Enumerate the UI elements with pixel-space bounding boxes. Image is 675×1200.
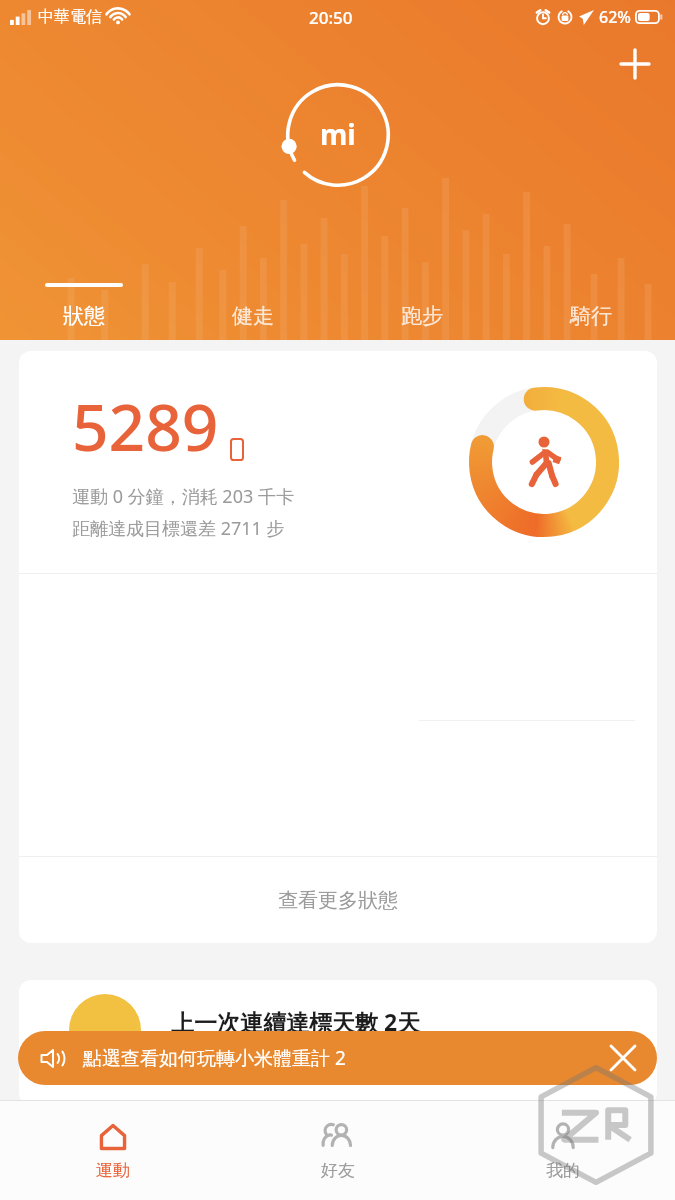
staticText: 20:50 [309, 6, 353, 29]
staticText: 狀態 [63, 303, 105, 329]
button[interactable]: 我的 [450, 1101, 675, 1200]
staticText: 62% [599, 6, 631, 28]
button[interactable]: 查看更多狀態 [19, 857, 657, 943]
button[interactable]: 好友 [225, 1101, 450, 1200]
staticText: 好友 [321, 1160, 355, 1181]
button[interactable]: 運動 [0, 1101, 225, 1200]
button[interactable]: Add [611, 40, 659, 88]
staticText: 查看更多狀態 [278, 888, 398, 913]
button[interactable]: 點選查看如何玩轉小米體重計 2 [18, 1031, 657, 1085]
staticText: 中華電信 [38, 7, 102, 27]
button[interactable]: 上一次連續達標天數 2天 [19, 980, 657, 1105]
button[interactable]: 5289 [19, 351, 657, 943]
button[interactable]: 騎行 [506, 277, 675, 332]
staticText: 我的 [546, 1160, 580, 1181]
staticText: 騎行 [570, 303, 612, 329]
staticText: 點選查看如何玩轉小米體重計 2 [83, 1045, 603, 1071]
staticText: 跑步 [401, 303, 443, 329]
button[interactable]: 跑步 [337, 277, 506, 332]
staticText: 距離達成目標還差 2711 步 [72, 516, 285, 541]
button[interactable]: 健走 [168, 277, 337, 332]
staticText: 運動 0 分鐘，消耗 203 千卡 [72, 484, 294, 509]
staticText: 上一次連續達標天數 2天 [171, 1006, 421, 1037]
staticText: 5289 [72, 383, 219, 470]
button[interactable]: Close [603, 1038, 643, 1078]
staticText: 運動 [96, 1160, 130, 1181]
staticText: mi [320, 115, 356, 153]
staticText: 健走 [232, 303, 274, 329]
button[interactable]: 狀態 [0, 277, 168, 332]
